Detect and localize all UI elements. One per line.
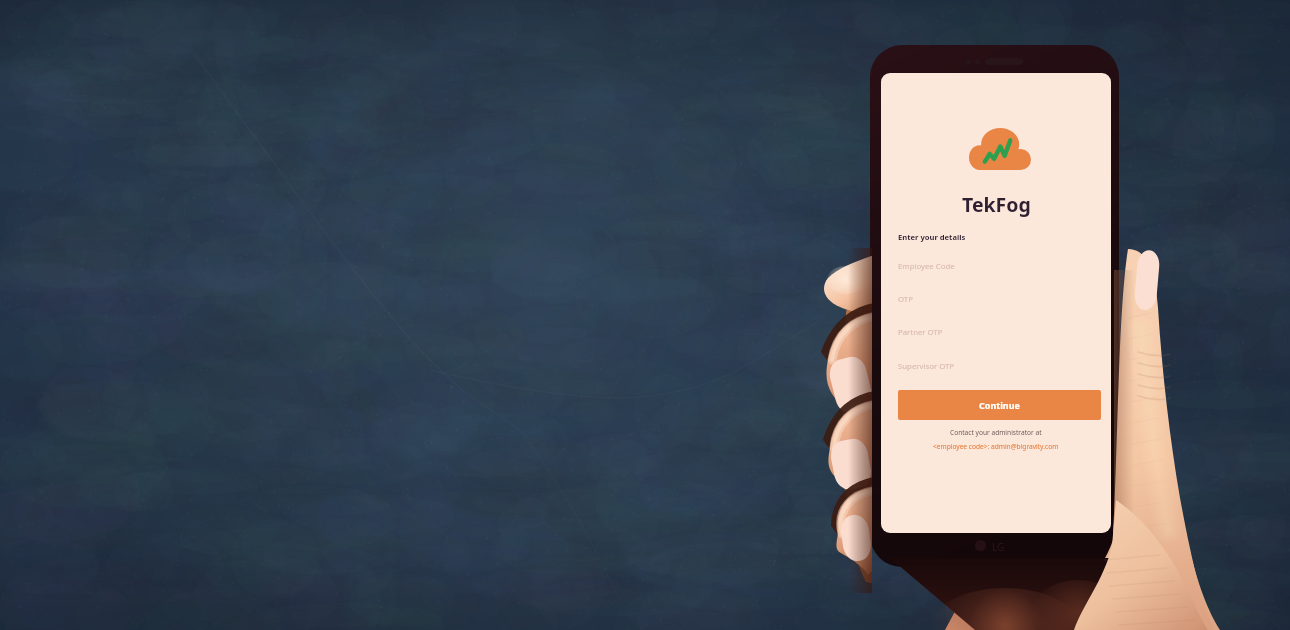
staticText: TekFog: [962, 191, 1031, 218]
staticText: Continue: [979, 399, 1020, 411]
button[interactable]: Continue: [898, 390, 1101, 420]
staticText: Supervisor OTP: [898, 361, 955, 372]
staticText: OTP: [898, 294, 913, 305]
button[interactable]: Supervisor OTP: [898, 353, 1101, 379]
staticText: Contact your administrator at: [950, 428, 1042, 437]
button[interactable]: Partner OTP: [898, 319, 1101, 345]
staticText: Partner OTP: [898, 327, 943, 338]
staticText: Employee Code: [898, 261, 955, 272]
staticText: Enter your details: [898, 232, 966, 242]
button[interactable]: <employee code>: admin@bigravity.com: [933, 442, 1059, 451]
button[interactable]: Employee Code: [898, 253, 1101, 279]
staticText: LG: [992, 540, 1005, 554]
